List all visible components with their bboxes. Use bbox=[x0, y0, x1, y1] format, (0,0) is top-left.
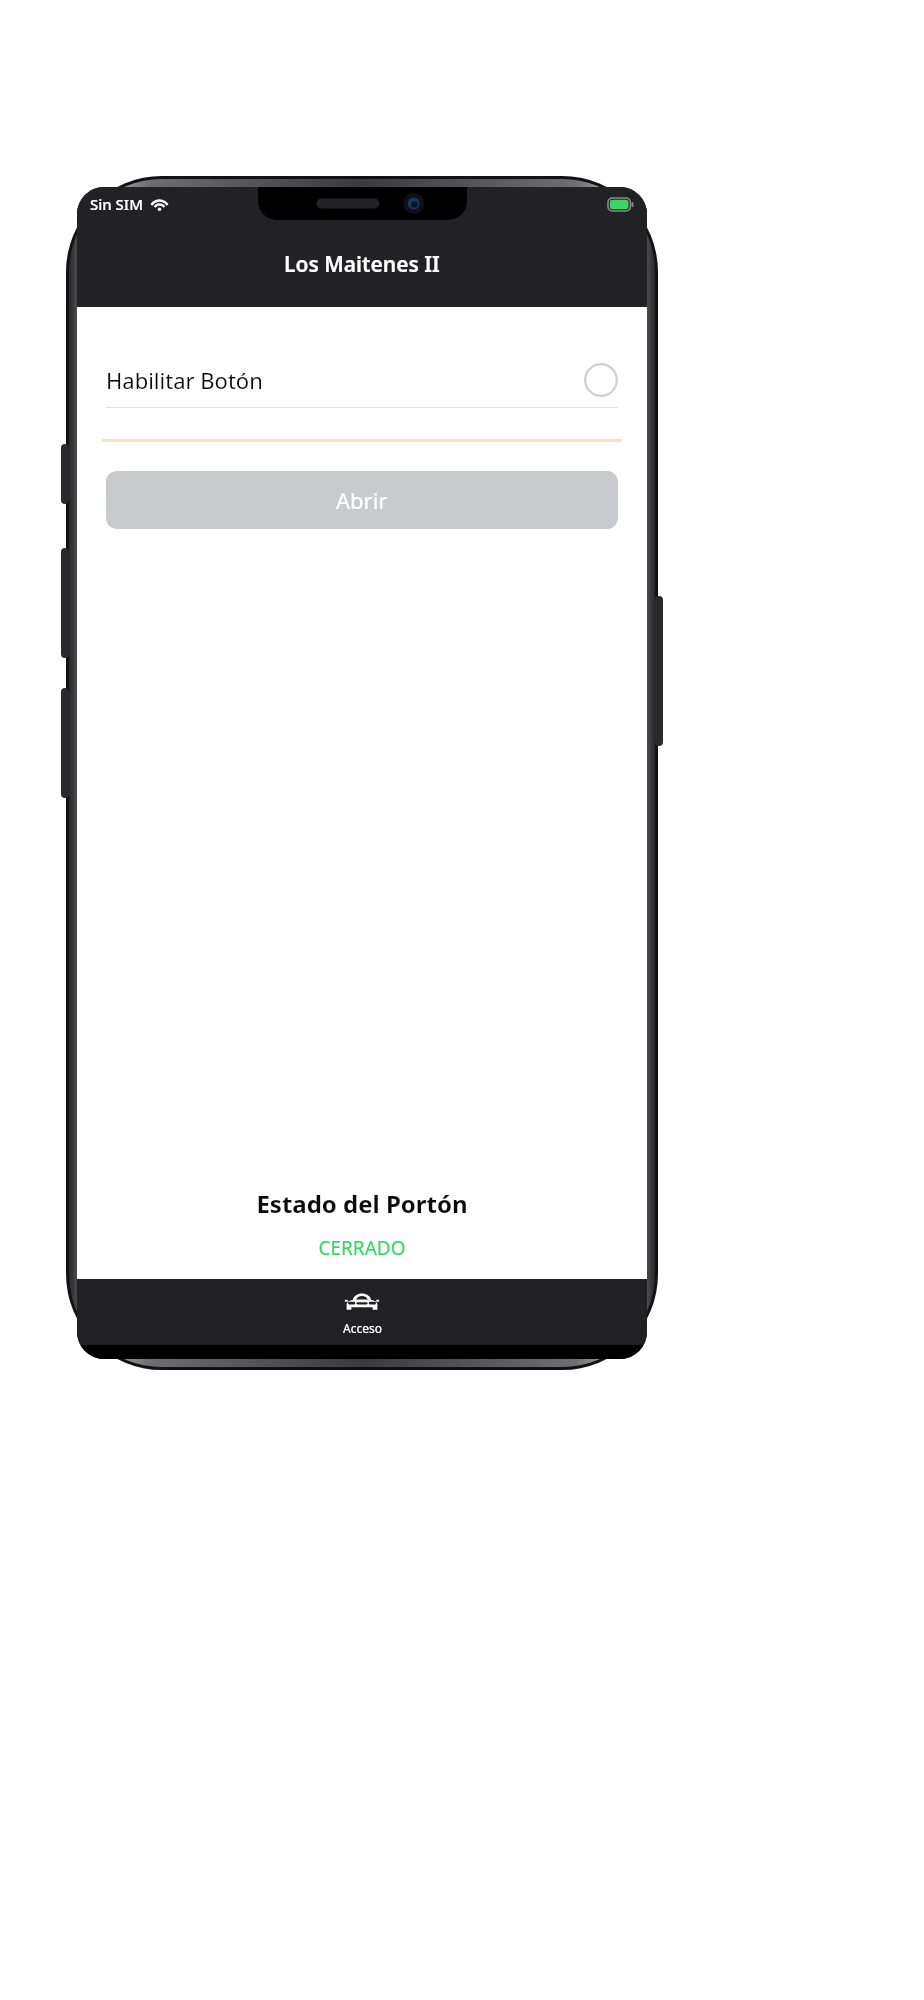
button[interactable]: Abrir bbox=[106, 471, 618, 529]
staticText: Los Maitenes II bbox=[284, 250, 440, 279]
staticText: Estado del Portón bbox=[77, 1187, 647, 1220]
staticText: CERRADO bbox=[77, 1235, 647, 1261]
other: Acceso bbox=[343, 1289, 381, 1315]
button[interactable]: Acceso bbox=[302, 1279, 422, 1345]
staticText: Abrir bbox=[336, 485, 388, 515]
staticText: Acceso bbox=[343, 1320, 382, 1336]
button[interactable]: Habilitar Botón bbox=[584, 363, 618, 397]
button[interactable]: Habilitar Botón bbox=[106, 353, 618, 407]
staticText: Sin SIM bbox=[90, 194, 143, 214]
staticText: Habilitar Botón bbox=[106, 365, 263, 395]
